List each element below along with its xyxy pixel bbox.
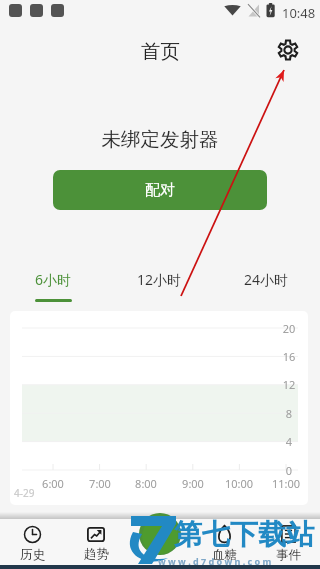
staticText: 8 (277, 406, 301, 421)
button[interactable]: 12小时 (106, 263, 213, 305)
staticText: 趋势 (84, 546, 109, 562)
staticText: 20 (277, 321, 301, 336)
staticText: 未绑定发射器 (0, 127, 320, 152)
staticText: 历史 (20, 547, 45, 563)
button[interactable]: Settings (270, 32, 305, 67)
button[interactable]: 配对 (53, 170, 267, 210)
button[interactable]: 事件 (256, 519, 320, 569)
staticText: 配对 (145, 181, 175, 200)
staticText: 8:00 (124, 476, 168, 491)
staticText: 6:00 (31, 476, 75, 491)
button[interactable]: 历史 (0, 519, 64, 569)
staticText: 6小时 (35, 270, 72, 289)
staticText: w w w . d 7 d o w n . c o m (158, 555, 272, 567)
staticText: 血糖 (212, 547, 237, 563)
staticText: 首页 (141, 39, 180, 64)
staticText: 16 (277, 349, 301, 364)
staticText: 9:00 (171, 476, 215, 491)
button[interactable]: 趋势 (64, 519, 128, 569)
staticText: 事件 (276, 547, 301, 563)
staticText: 7:00 (78, 476, 122, 491)
staticText: 4 (277, 434, 301, 449)
staticText: 12小时 (137, 270, 182, 289)
button[interactable]: 24小时 (213, 263, 320, 305)
button[interactable]: 血糖 (192, 519, 256, 569)
staticText: 0 (277, 463, 301, 478)
staticText: 12 (277, 377, 301, 392)
staticText: 10:00 (217, 476, 261, 491)
button[interactable]: Add reading (139, 513, 181, 555)
staticText: 10:48 (282, 4, 316, 22)
staticText: 4-29 (14, 486, 35, 500)
staticText: 24小时 (244, 270, 289, 289)
staticText: 11:00 (264, 476, 308, 491)
staticText: 第七下载站 (174, 517, 314, 552)
button[interactable]: 6小时 (0, 263, 106, 305)
